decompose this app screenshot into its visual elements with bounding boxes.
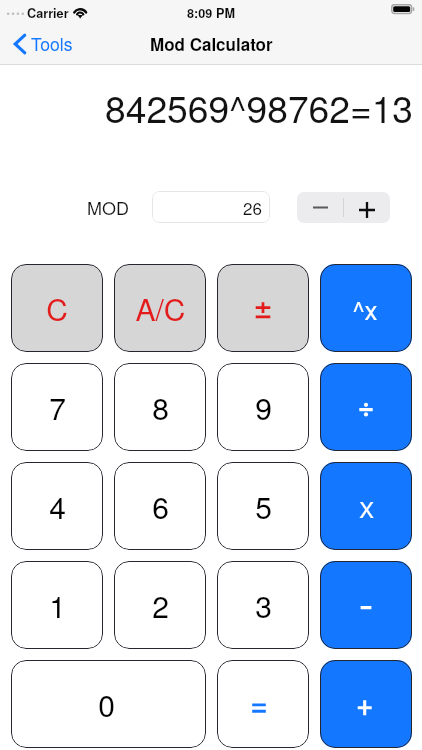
- staticText: Tools: [31, 31, 73, 56]
- staticText: X: [359, 493, 374, 525]
- button[interactable]: Increase modulus: [344, 192, 390, 223]
- button[interactable]: Divide: [320, 363, 412, 451]
- button[interactable]: 1: [11, 561, 103, 649]
- button[interactable]: ^x: [320, 264, 412, 352]
- button[interactable]: 26: [152, 191, 270, 223]
- button[interactable]: Decrease modulus: [297, 192, 343, 223]
- button[interactable]: 5: [217, 462, 309, 550]
- button[interactable]: Plus minus: [217, 264, 309, 352]
- staticText: Mod Calculator: [150, 32, 273, 56]
- button[interactable]: 4: [11, 462, 103, 550]
- button[interactable]: Plus: [320, 660, 412, 748]
- button[interactable]: X: [320, 462, 412, 550]
- staticText: A/C: [135, 287, 186, 330]
- button[interactable]: 2: [114, 561, 206, 649]
- staticText: 2: [152, 584, 169, 627]
- button[interactable]: 0: [11, 660, 206, 748]
- staticText: 7: [49, 386, 66, 429]
- button[interactable]: A/C: [114, 264, 206, 352]
- button[interactable]: Tools: [12, 31, 73, 56]
- button[interactable]: Equals: [217, 660, 309, 748]
- button[interactable]: 6: [114, 462, 206, 550]
- button[interactable]: Minus: [320, 561, 412, 649]
- button[interactable]: 7: [11, 363, 103, 451]
- staticText: 0: [98, 683, 115, 726]
- staticText: MOD: [87, 194, 129, 220]
- staticText: 5: [255, 485, 272, 528]
- staticText: 842569^98762=13: [0, 80, 413, 133]
- staticText: Carrier: [27, 4, 69, 22]
- button[interactable]: 3: [217, 561, 309, 649]
- staticText: 8: [152, 386, 169, 429]
- button[interactable]: 9: [217, 363, 309, 451]
- staticText: 8:09 PM: [0, 4, 422, 22]
- staticText: 1: [49, 584, 66, 627]
- staticText: 26: [243, 195, 262, 219]
- staticText: 6: [152, 485, 169, 528]
- staticText: 9: [255, 386, 272, 429]
- staticText: ^x: [352, 290, 378, 327]
- button[interactable]: 8: [114, 363, 206, 451]
- staticText: 4: [49, 485, 66, 528]
- staticText: C: [46, 287, 68, 330]
- staticText: 3: [255, 584, 272, 627]
- button[interactable]: C: [11, 264, 103, 352]
